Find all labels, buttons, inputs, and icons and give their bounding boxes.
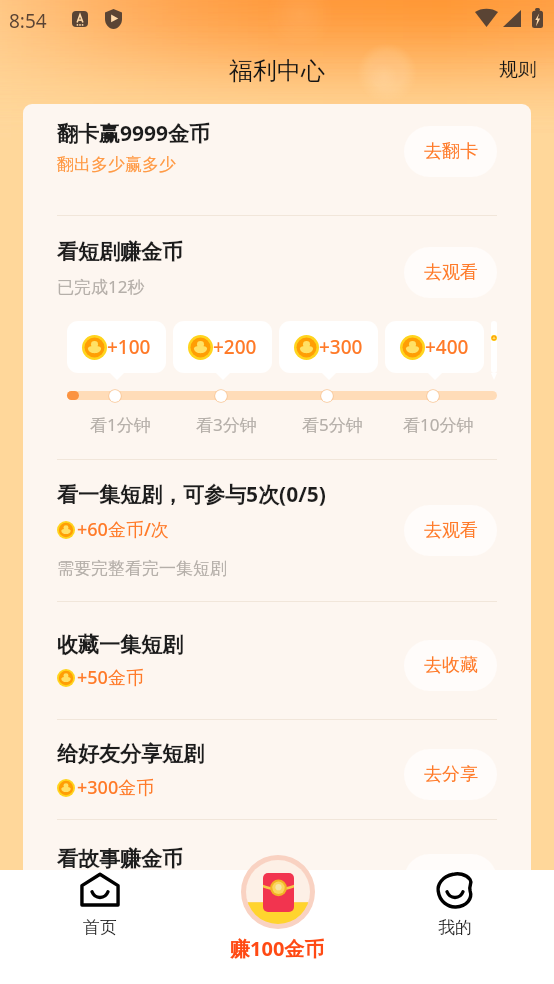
button[interactable]: 赚100金币 [230, 855, 325, 962]
staticText: 看3分钟 [196, 413, 257, 436]
button[interactable]: 去翻卡 [404, 126, 497, 177]
staticText: 看1分钟 [90, 413, 151, 436]
button[interactable]: 我的 [412, 872, 497, 938]
staticText: 已完成12秒 [57, 275, 145, 298]
staticText: 看5分钟 [302, 413, 363, 436]
staticText: 翻出多少赢多少 [57, 154, 176, 175]
staticText: 翻卡赢9999金币 [57, 119, 211, 148]
button[interactable]: 去收藏 [404, 640, 497, 691]
staticText: 看短剧赚金币 [57, 239, 183, 265]
staticText: +30金币 [77, 880, 144, 905]
button[interactable]: 去观看 [404, 247, 497, 298]
staticText: 去分享 [424, 763, 478, 786]
button[interactable]: 首页 [57, 872, 142, 938]
staticText: 需要完整看完一集短剧 [57, 558, 227, 579]
staticText: 去观看 [424, 519, 478, 542]
staticText: 看一集短剧，可参与5次(0/5) [57, 480, 326, 509]
staticText: 看故事赚金币 [57, 846, 183, 872]
staticText: 首页 [83, 917, 117, 938]
staticText: +60金币/次 [77, 517, 169, 542]
button[interactable]: 去观看 [404, 854, 497, 905]
staticText: 赚100金币 [230, 935, 325, 962]
staticText: 给好友分享短剧 [57, 741, 204, 767]
staticText: 去观看 [424, 868, 478, 891]
staticText: 福利中心 [229, 56, 325, 86]
staticText: 去收藏 [424, 654, 478, 677]
staticText: +200 [213, 334, 257, 360]
button[interactable]: 去分享 [404, 749, 497, 800]
button[interactable]: 规则 [483, 52, 554, 90]
staticText: 我的 [438, 917, 472, 938]
button[interactable]: 去观看 [404, 505, 497, 556]
staticText: +400 [425, 334, 469, 360]
staticText: +50金币 [77, 665, 144, 690]
staticText: 去翻卡 [424, 140, 478, 163]
staticText: 去观看 [424, 261, 478, 284]
staticText: 8:54 [9, 8, 47, 34]
staticText: +100 [107, 334, 151, 360]
staticText: +300金币 [77, 775, 155, 800]
staticText: 看10分钟 [403, 413, 474, 436]
staticText: 收藏一集短剧 [57, 632, 183, 658]
staticText: 规则 [499, 58, 537, 82]
staticText: +300 [319, 334, 363, 360]
